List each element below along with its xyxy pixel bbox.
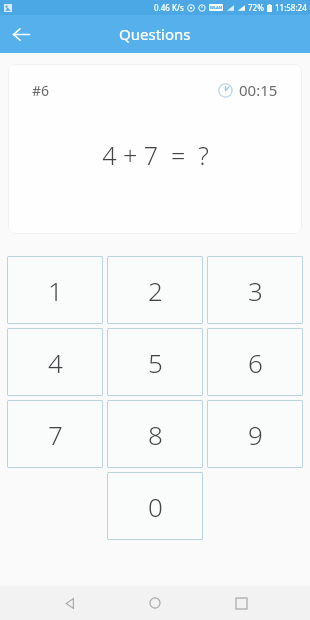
staticText: #6 [32,81,50,100]
button[interactable]: 2 [107,256,203,324]
button[interactable]: 1 [7,256,103,324]
staticText: 4 [48,345,63,380]
button[interactable]: Home [138,586,172,620]
button[interactable]: Back [6,19,36,49]
button[interactable]: 3 [207,256,303,324]
staticText: 11:58:24 [275,2,307,13]
button[interactable]: 9 [207,400,303,468]
staticText: 9 [248,417,263,452]
button[interactable]: 5 [107,328,203,396]
staticText: 0.46 K/s [154,2,184,13]
staticText: 5 [148,345,163,380]
staticText: 8 [148,417,163,452]
staticText: 3 [248,273,263,308]
staticText: WLAN [210,5,223,10]
staticText: 7 [48,417,63,452]
staticText: Questions [119,24,191,44]
button[interactable]: 8 [107,400,203,468]
button[interactable]: Back [52,586,86,620]
button[interactable]: 0 [107,472,203,540]
staticText: 72% [248,2,264,13]
button[interactable]: 4 [7,328,103,396]
staticText: 2 [148,273,163,308]
button[interactable]: 6 [207,328,303,396]
staticText: 1 [48,273,63,308]
staticText: 6 [248,345,263,380]
button[interactable]: 7 [7,400,103,468]
staticText: 4 + 7 = ? [102,138,209,172]
staticText: 00:15 [239,80,278,100]
staticText: 0 [148,489,163,524]
button[interactable]: Recents [224,586,258,620]
